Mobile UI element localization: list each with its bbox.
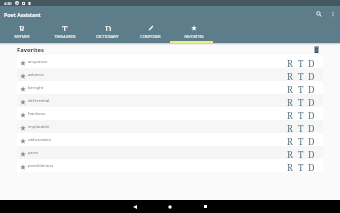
staticText: D — [308, 161, 315, 173]
button[interactable]: More options — [326, 7, 340, 21]
staticText: R — [19, 24, 25, 31]
staticText: R — [287, 57, 293, 69]
staticText: T — [298, 148, 304, 160]
button[interactable]: obfuscation — [17, 133, 323, 146]
button[interactable]: acquiesce — [17, 55, 323, 68]
button[interactable]: T — [295, 68, 306, 81]
staticText: D — [308, 122, 315, 134]
staticText: T — [298, 70, 304, 82]
button[interactable]: D — [306, 94, 317, 107]
staticText: R — [287, 109, 293, 121]
staticText: deferential — [28, 98, 50, 104]
staticText: implacable — [28, 124, 50, 130]
button[interactable]: Search — [312, 7, 326, 21]
staticText: T — [298, 57, 304, 69]
staticText: obfuscation — [28, 137, 52, 143]
button[interactable]: Back — [126, 200, 144, 213]
staticText: R — [287, 161, 293, 173]
button[interactable]: T — [295, 94, 306, 107]
button[interactable]: D — [306, 133, 317, 146]
staticText: D — [105, 24, 112, 31]
staticText: FAVORITES — [184, 34, 204, 39]
button[interactable]: R — [284, 55, 295, 68]
staticText: D — [308, 96, 315, 108]
staticText: Poet Assistant — [4, 11, 41, 18]
button[interactable]: D — [306, 159, 317, 172]
staticText: R — [287, 96, 293, 108]
button[interactable]: R — [284, 81, 295, 94]
button[interactable]: Recent apps — [196, 200, 214, 213]
button[interactable]: R — [284, 146, 295, 159]
staticText: 4:30 — [4, 1, 12, 6]
button[interactable]: D — [306, 120, 317, 133]
staticText: D — [308, 57, 315, 69]
staticText: THESAURUS — [54, 34, 76, 39]
button[interactable]: D — [306, 81, 317, 94]
staticText: acquiesce — [28, 59, 48, 65]
button[interactable]: benight — [17, 81, 323, 94]
staticText: T — [62, 24, 68, 31]
staticText: D — [308, 83, 315, 95]
button[interactable]: Delete all favorites — [311, 44, 322, 54]
button[interactable]: R — [284, 94, 295, 107]
staticText: R — [287, 148, 293, 160]
staticText: R — [287, 83, 293, 95]
staticText: T — [298, 96, 304, 108]
button[interactable]: D — [86, 22, 129, 43]
button[interactable]: Home — [161, 200, 179, 213]
staticText: fractious — [28, 111, 46, 117]
button[interactable]: T — [295, 81, 306, 94]
staticText: RHYMER — [14, 34, 30, 39]
staticText: benight — [28, 85, 44, 91]
staticText: T — [298, 109, 304, 121]
staticText: T — [298, 135, 304, 147]
staticText: Favorites — [17, 46, 44, 54]
button[interactable]: D — [306, 107, 317, 120]
staticText: D — [308, 135, 315, 147]
staticText: R — [287, 122, 293, 134]
button[interactable]: R — [284, 159, 295, 172]
button[interactable]: T — [295, 120, 306, 133]
button[interactable]: implacable — [17, 120, 323, 133]
button[interactable]: T — [295, 159, 306, 172]
staticText: COMPOSER — [140, 34, 161, 39]
staticText: R — [287, 70, 293, 82]
staticText: D — [308, 109, 315, 121]
button[interactable]: FAVORITES — [172, 22, 215, 43]
button[interactable]: T — [295, 133, 306, 146]
staticText: peon — [28, 150, 39, 156]
button[interactable]: T — [43, 22, 86, 43]
button[interactable]: COMPOSER — [129, 22, 172, 43]
staticText: T — [298, 161, 304, 173]
button[interactable]: T — [295, 107, 306, 120]
staticText: T — [298, 122, 304, 134]
button[interactable]: askance — [17, 68, 323, 81]
button[interactable]: T — [295, 146, 306, 159]
button[interactable]: R — [284, 120, 295, 133]
staticText: possibleness — [28, 163, 54, 169]
button[interactable]: D — [306, 55, 317, 68]
staticText: T — [298, 83, 304, 95]
button[interactable]: deferential — [17, 94, 323, 107]
button[interactable]: peon — [17, 146, 323, 159]
button[interactable]: D — [306, 68, 317, 81]
button[interactable]: D — [306, 146, 317, 159]
staticText: R — [287, 135, 293, 147]
button[interactable]: R — [284, 107, 295, 120]
button[interactable]: possibleness — [17, 159, 323, 172]
button[interactable]: R — [0, 22, 43, 43]
staticText: askance — [28, 72, 44, 78]
staticText: D — [308, 148, 315, 160]
button[interactable]: R — [284, 68, 295, 81]
staticText: D — [308, 70, 315, 82]
button[interactable]: R — [284, 133, 295, 146]
button[interactable]: fractious — [17, 107, 323, 120]
button[interactable]: T — [295, 55, 306, 68]
staticText: DICTIONARY — [96, 34, 119, 39]
